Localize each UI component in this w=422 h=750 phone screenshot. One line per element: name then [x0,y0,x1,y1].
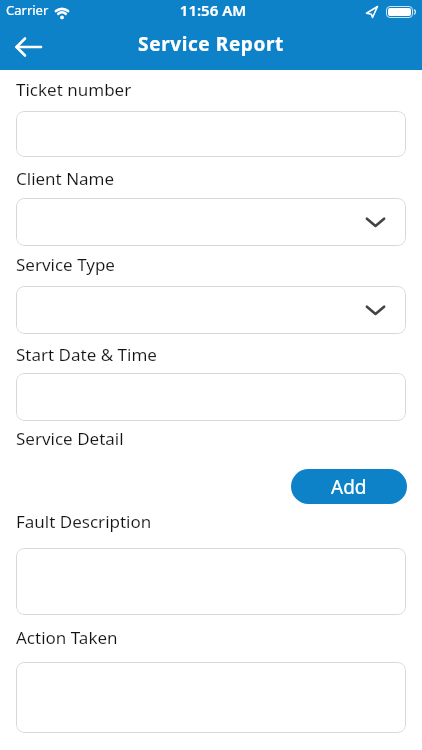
button[interactable] [16,286,406,334]
staticText: Service Type [16,253,115,276]
staticText: Carrier [6,1,49,19]
staticText: Fault Description [16,510,152,533]
staticText: Client Name [16,167,115,190]
staticText: Start Date & Time [16,343,157,366]
button[interactable] [16,662,406,733]
staticText: Ticket number [16,78,132,101]
button[interactable] [10,28,48,66]
button[interactable] [16,548,406,615]
button[interactable]: Add [291,469,407,504]
staticText: Service Report [0,31,422,57]
staticText: Service Detail [16,427,124,450]
staticText: 11:56 AM [2,0,422,20]
staticText: Action Taken [16,626,118,649]
button[interactable] [16,198,406,246]
button[interactable] [16,111,406,157]
staticText: Add [331,474,367,500]
button[interactable] [16,373,406,421]
